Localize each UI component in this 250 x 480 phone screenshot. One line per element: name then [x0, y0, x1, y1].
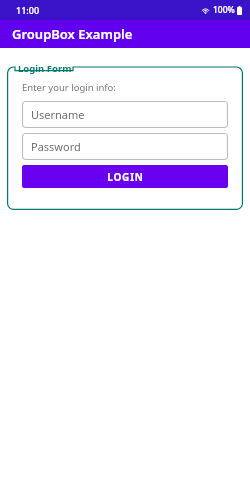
button[interactable]: Username: [22, 101, 228, 128]
button[interactable]: Password: [22, 133, 228, 160]
staticText: LOGIN: [107, 170, 144, 184]
other: Wi-Fi: [201, 7, 210, 14]
staticText: Login Form: [18, 62, 72, 75]
staticText: Enter your login info:: [22, 81, 116, 94]
staticText: Password: [31, 139, 81, 154]
button[interactable]: LOGIN: [22, 165, 228, 188]
staticText: GroupBox Example: [12, 25, 133, 43]
staticText: 11:00: [16, 4, 40, 16]
other: Battery full: [237, 6, 242, 15]
staticText: Username: [31, 107, 85, 122]
staticText: 100%: [213, 4, 235, 16]
